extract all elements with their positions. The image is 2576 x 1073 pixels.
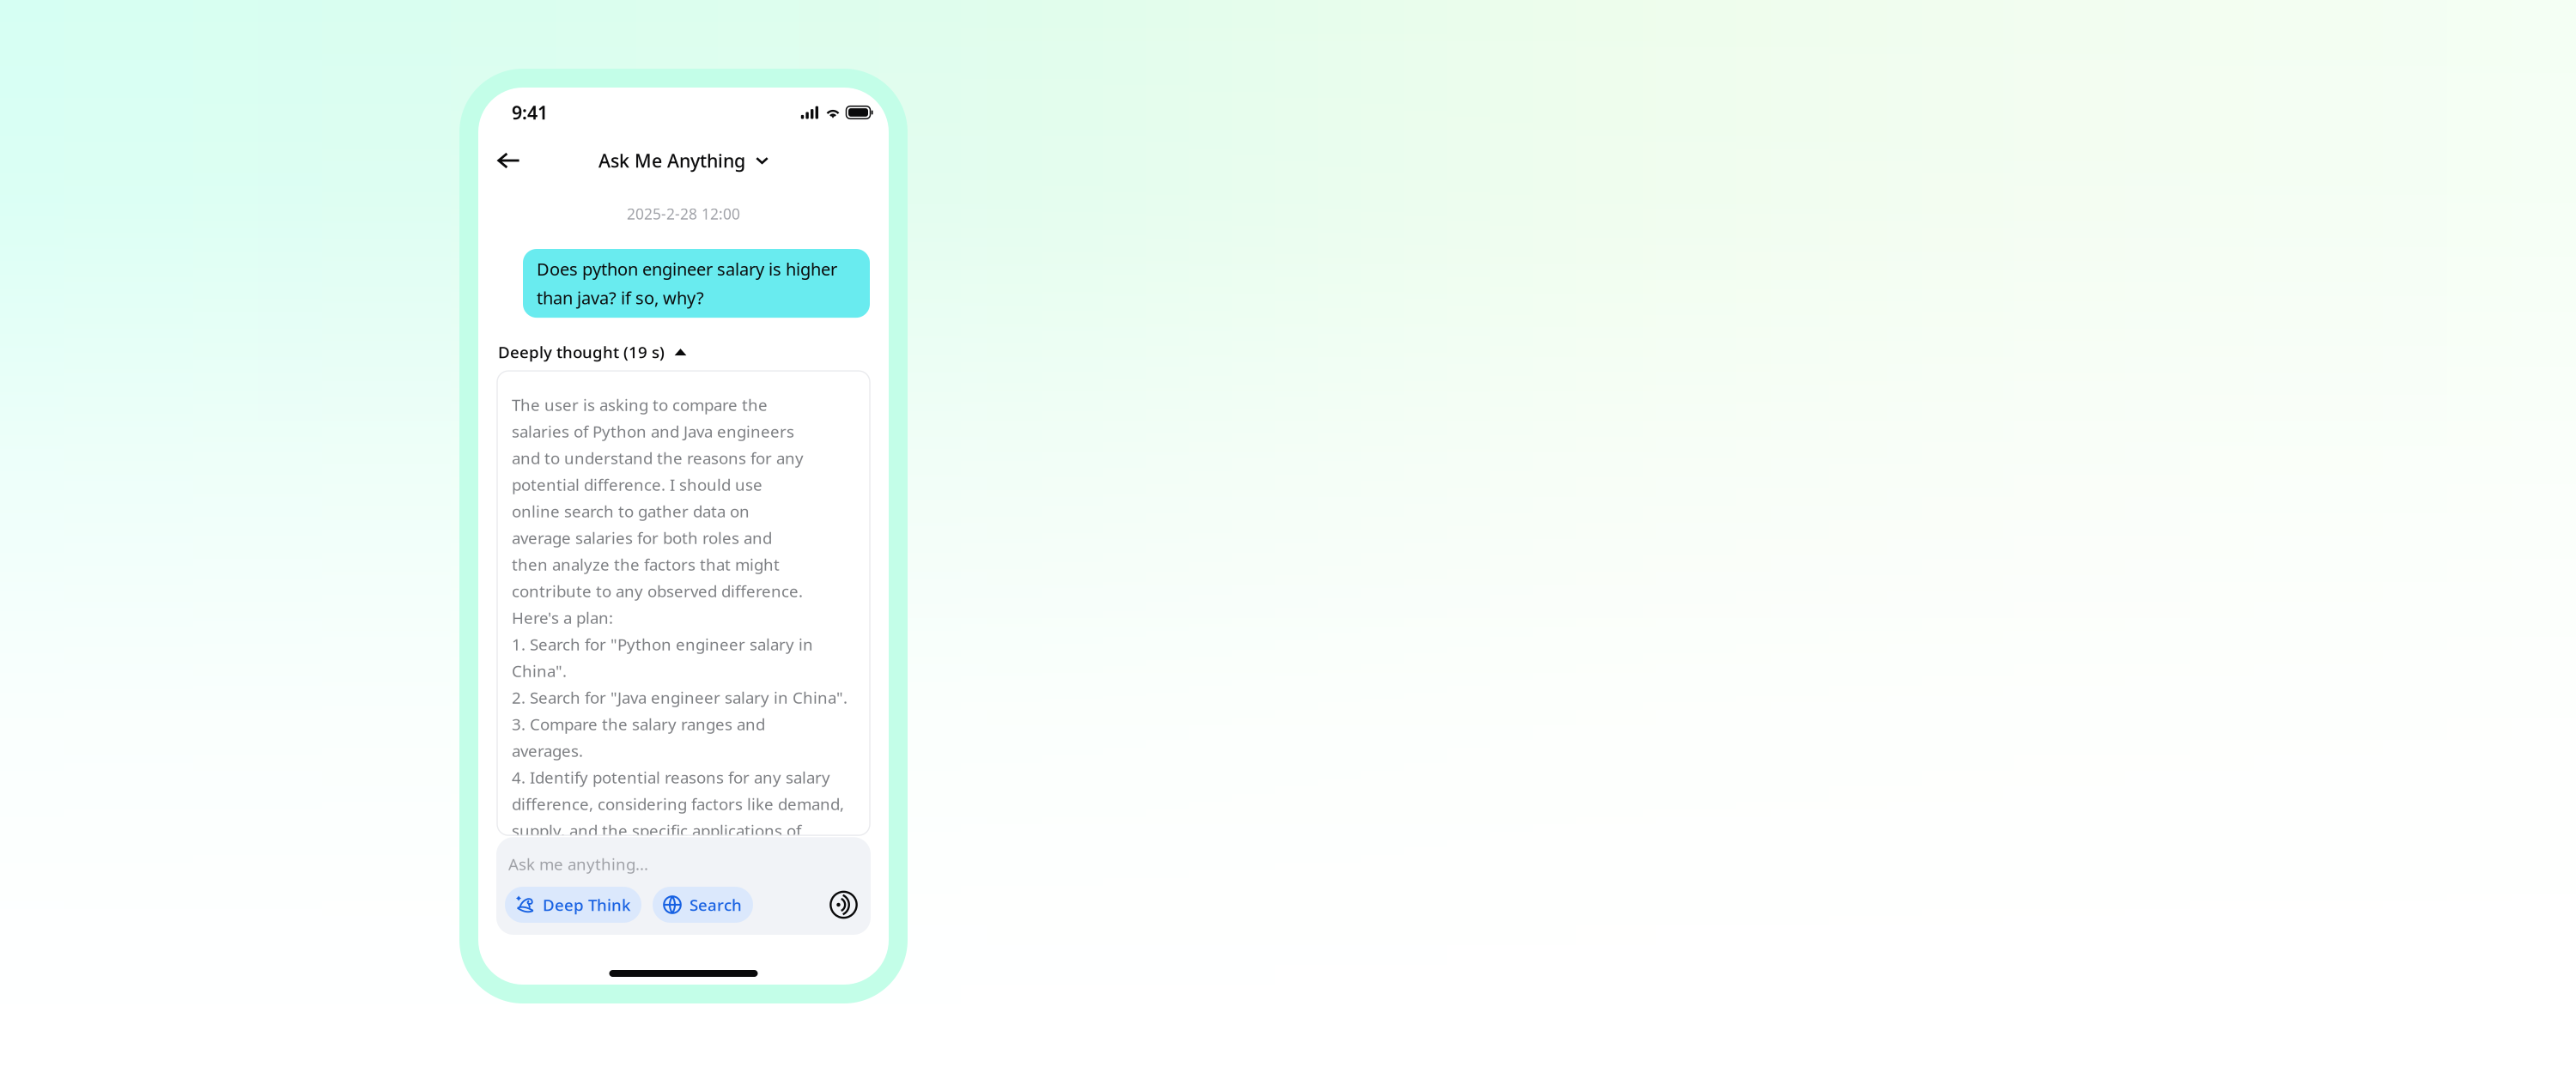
button[interactable]: Deeply thought (19 s) bbox=[498, 342, 687, 362]
staticText: The user is asking to compare the bbox=[512, 394, 768, 415]
staticText: Deep Think bbox=[543, 894, 630, 915]
staticText: 3. Compare the salary ranges and bbox=[512, 714, 765, 735]
button[interactable]: Voice input bbox=[829, 891, 858, 919]
staticText: Here's a plan: bbox=[512, 607, 613, 628]
staticText: contribute to any observed difference. bbox=[512, 580, 803, 602]
staticText: salaries of Python and Java engineers bbox=[512, 421, 794, 442]
staticText: Ask me anything... bbox=[508, 853, 648, 875]
button[interactable]: Search bbox=[653, 887, 753, 923]
staticText: China". bbox=[512, 660, 567, 682]
staticText: then analyze the factors that might bbox=[512, 554, 780, 575]
staticText: Does python engineer salary is higher bbox=[537, 258, 837, 280]
staticText: average salaries for both roles and bbox=[512, 527, 772, 549]
staticText: 1. Search for "Python engineer salary in bbox=[512, 634, 813, 655]
staticText: 2. Search for "Java engineer salary in C… bbox=[512, 687, 848, 708]
staticText: 4. Identify potential reasons for any sa… bbox=[512, 767, 830, 788]
button[interactable]: Deep Think bbox=[505, 887, 641, 923]
staticText: Ask Me Anything bbox=[598, 148, 745, 173]
staticText: and to understand the reasons for any bbox=[512, 447, 804, 469]
staticText: Search bbox=[690, 894, 742, 915]
staticText: than java? if so, why? bbox=[537, 286, 704, 309]
staticText: online search to gather data on bbox=[512, 501, 750, 522]
staticText: supply, and the specific applications of bbox=[512, 820, 801, 841]
staticText: 2025-2-28 12:00 bbox=[627, 204, 740, 224]
button[interactable]: Ask Me Anything bbox=[593, 142, 774, 179]
staticText: averages. bbox=[512, 740, 583, 761]
staticText: each language. bbox=[512, 847, 627, 868]
staticText: Deeply thought (19 s) bbox=[498, 341, 665, 363]
staticText: potential difference. I should use bbox=[512, 474, 762, 495]
button[interactable]: Back bbox=[497, 141, 538, 180]
staticText: 9:41 bbox=[512, 100, 548, 125]
staticText: difference, considering factors like dem… bbox=[512, 793, 844, 815]
